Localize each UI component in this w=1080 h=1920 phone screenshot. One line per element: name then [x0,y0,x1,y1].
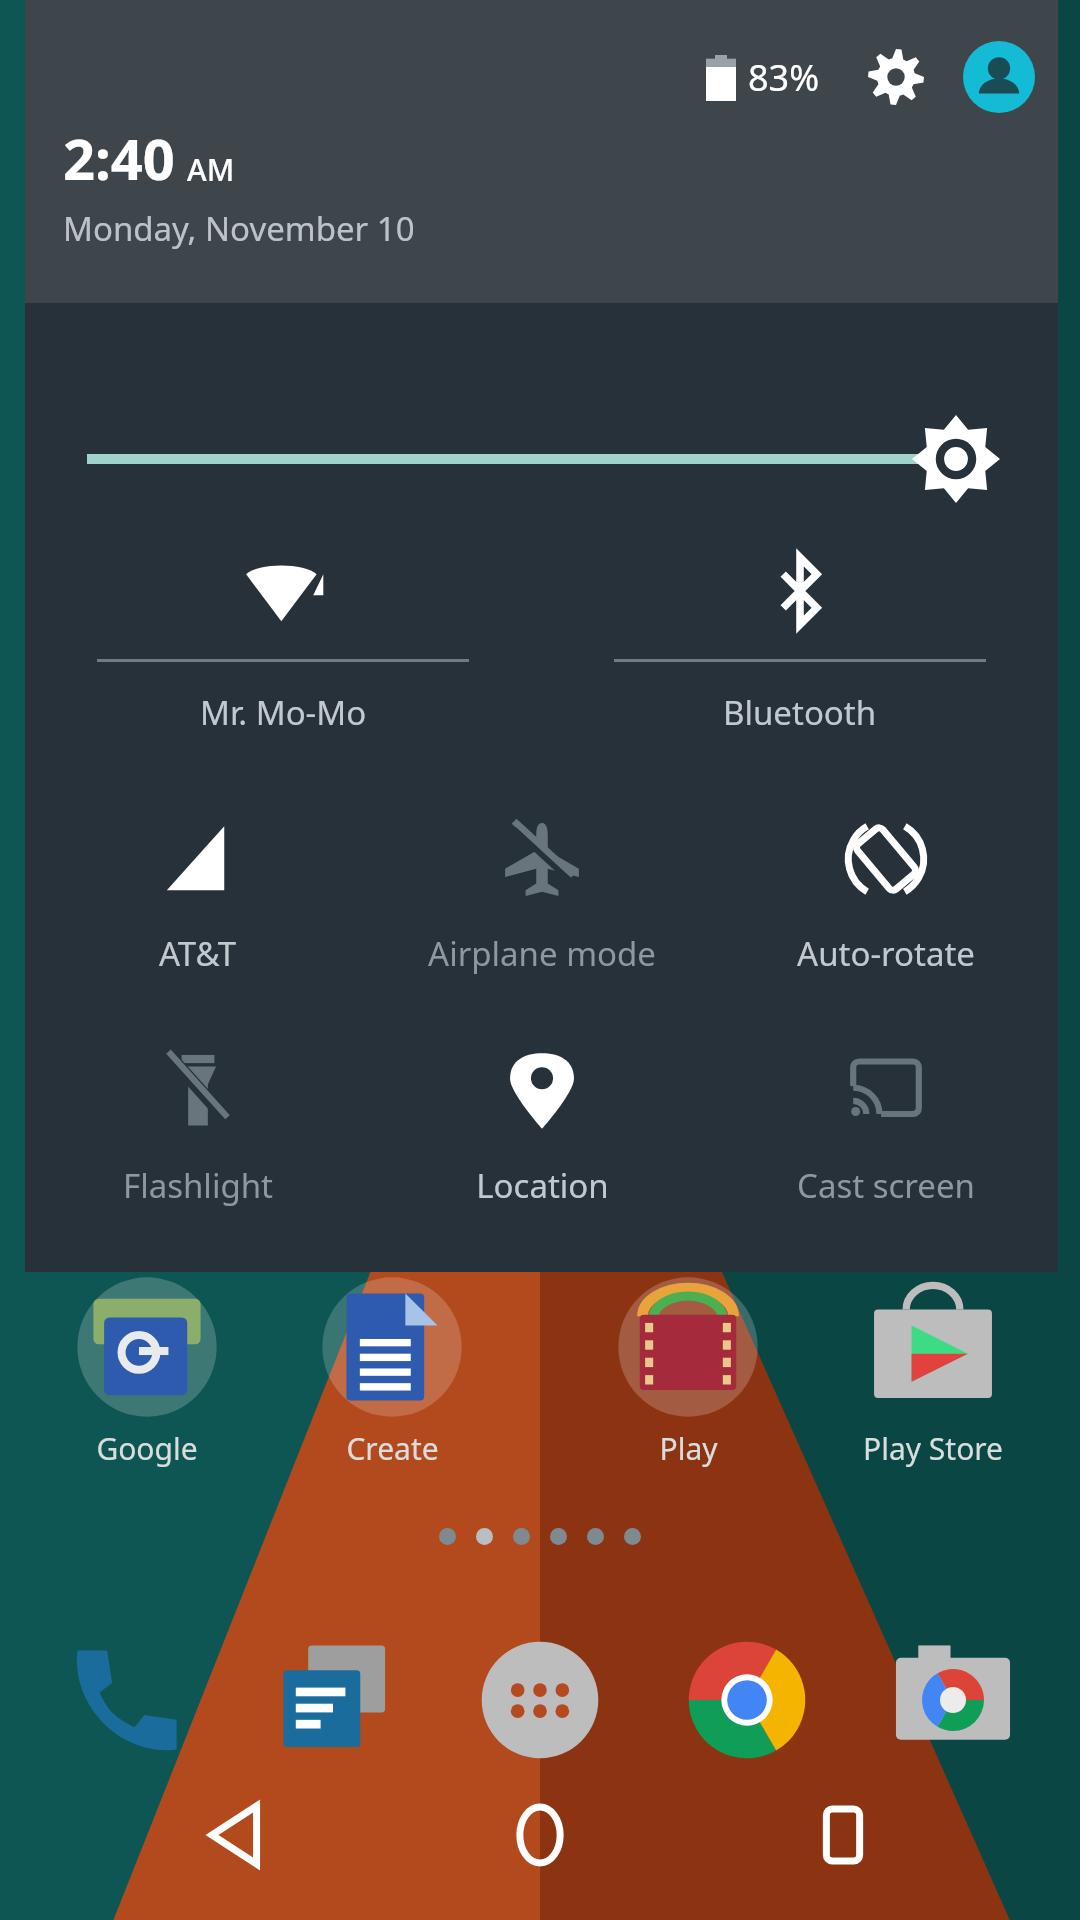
staticText: Monday, November 10 [63,206,415,251]
button[interactable]: Auto-rotate [714,803,1058,993]
staticText: Create [346,1428,439,1469]
staticText: AM [187,149,235,190]
button[interactable]: Airplane mode [370,803,714,993]
staticText: AT&T [159,931,236,976]
button[interactable]: Google [49,1272,245,1469]
button[interactable]: Location [370,1035,714,1225]
staticText: Play [659,1428,718,1469]
button[interactable]: 83% [698,47,828,108]
button[interactable]: AT&T [25,803,370,993]
button[interactable]: Play Store [835,1272,1031,1469]
staticText: Auto-rotate [797,931,975,976]
staticText: Play Store [863,1428,1003,1469]
staticText: Flashlight [123,1163,273,1208]
staticText: Google [96,1428,198,1469]
staticText: Bluetooth [723,690,877,735]
button[interactable]: Play [590,1272,786,1469]
button[interactable]: Recents [778,1770,908,1900]
button[interactable]: Back [173,1770,303,1900]
button[interactable]: Chrome [667,1625,827,1775]
staticText: Airplane mode [428,931,656,976]
button[interactable]: Create [294,1272,490,1469]
staticText: 83% [748,53,820,102]
button[interactable]: Messages [253,1625,413,1775]
button[interactable]: Settings [864,45,928,109]
button[interactable]: Mr. Mo-Mo [25,541,541,761]
button[interactable]: Flashlight [25,1035,370,1225]
button[interactable]: Bluetooth [541,541,1058,761]
staticText: Mr. Mo-Mo [200,690,367,735]
button[interactable]: Home [475,1770,605,1900]
button[interactable]: Cast screen [714,1035,1058,1225]
staticText: 2:40 [63,120,175,196]
button[interactable]: Brightness [25,411,1058,507]
button[interactable]: User profile [962,40,1036,114]
button[interactable]: Phone [47,1625,207,1775]
button[interactable]: All apps [460,1625,620,1775]
staticText: Cast screen [797,1163,975,1208]
button[interactable]: Camera [873,1625,1033,1775]
staticText: Location [476,1163,609,1208]
